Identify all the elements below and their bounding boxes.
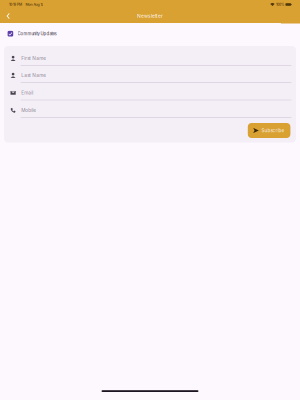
staticText: 100%: [276, 2, 284, 7]
staticText: Newsletter: [137, 13, 163, 19]
staticText: Mobile: [21, 107, 36, 113]
staticText: 10:19 PM: [9, 2, 22, 7]
button[interactable]: Community Updates: [0, 23, 300, 46]
staticText: Community Updates: [18, 31, 57, 36]
staticText: Subscribe: [261, 128, 284, 133]
staticText: Email: [21, 90, 33, 96]
staticText: First Name: [21, 56, 46, 61]
staticText: Mon Aug 12: [25, 2, 43, 7]
button[interactable]: Subscribe: [248, 123, 290, 138]
button[interactable]: Back: [0, 8, 19, 23]
staticText: Last Name: [21, 72, 46, 78]
